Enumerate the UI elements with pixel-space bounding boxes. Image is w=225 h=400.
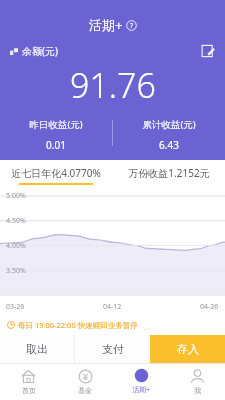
staticText: 活期+ (89, 16, 123, 34)
button[interactable]: 基金 (57, 363, 113, 400)
staticText: 我 (194, 386, 201, 395)
staticText: 04-26 (200, 302, 219, 312)
staticText: 支付 (102, 342, 124, 356)
staticText: 活期+ (132, 385, 151, 395)
staticText: 5.00% (6, 191, 26, 201)
button[interactable]: 万份收益1.2152元 (112, 160, 225, 190)
staticText: 累计收益(元) (142, 118, 196, 131)
button[interactable]: 帮助 (126, 20, 137, 31)
staticText: ? (130, 21, 134, 31)
staticText: 昨日收益(元) (29, 118, 83, 131)
button[interactable]: 存入 (150, 335, 225, 363)
staticText: 基金 (78, 386, 92, 395)
button[interactable]: 取出 (0, 335, 74, 363)
staticText: 04-12 (103, 302, 122, 312)
button[interactable]: 活期+ (113, 363, 169, 400)
staticText: 近七日年化4.0770% (11, 166, 101, 180)
staticText: 4.00% (6, 241, 26, 251)
staticText: 91.76 (70, 62, 156, 108)
staticText: 万份收益1.2152元 (128, 166, 210, 180)
staticText: 存入 (177, 342, 199, 356)
button[interactable]: 交易记录 (201, 44, 215, 58)
staticText: 3.50% (6, 266, 26, 276)
staticText: 03-26 (6, 302, 25, 312)
button[interactable]: 近七日年化4.0770% (0, 160, 112, 190)
staticText: 余额(元) (22, 44, 58, 58)
button[interactable]: 我 (169, 363, 225, 400)
staticText: 首页 (22, 386, 36, 395)
staticText: 0.01 (46, 138, 66, 152)
staticText: 取出 (26, 342, 48, 356)
staticText: 4.50% (6, 216, 26, 226)
button[interactable]: 支付 (75, 335, 150, 363)
staticText: 每日 19:00-22:00 快速赎回业务暂停 (18, 320, 138, 330)
button[interactable]: 首页 (0, 363, 57, 400)
staticText: 6.43 (159, 138, 179, 152)
